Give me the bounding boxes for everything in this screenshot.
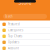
button[interactable]: Top Charts <box>0 33 50 39</box>
staticText: Featured <box>8 22 20 26</box>
staticText: Search <box>5 15 13 18</box>
staticText: Top Charts <box>8 34 22 38</box>
button[interactable]: Account <box>0 45 50 50</box>
button[interactable]: Categories <box>0 27 50 33</box>
button[interactable]: Updates <box>0 39 50 45</box>
staticText: Categories <box>8 28 23 32</box>
staticText: Account <box>8 46 19 50</box>
staticText: Updates <box>8 40 19 44</box>
button[interactable]: Featured <box>0 21 50 27</box>
staticText: Store <box>18 0 31 6</box>
